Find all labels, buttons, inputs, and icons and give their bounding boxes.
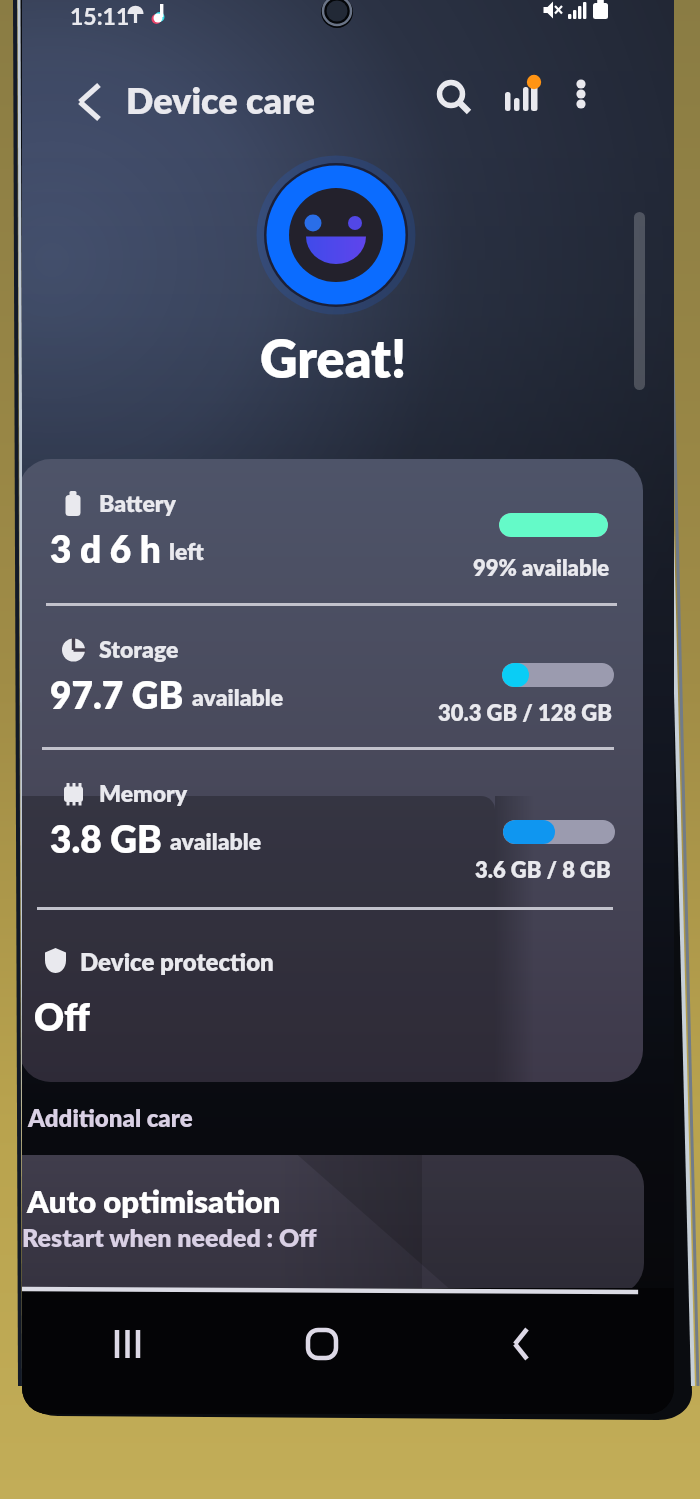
staticText: Battery <box>99 489 176 517</box>
staticText: left <box>169 537 204 565</box>
button[interactable]: Device care <box>126 78 315 121</box>
staticText: 3 d 6 h <box>50 526 161 570</box>
staticText: Additional care <box>28 1103 193 1132</box>
staticText: 97.7 GB <box>50 672 184 716</box>
button[interactable]: Usage statistics <box>483 70 531 118</box>
button[interactable]: More options <box>557 70 605 118</box>
button[interactable]: Battery <box>22 483 643 613</box>
staticText: Memory <box>99 779 188 807</box>
staticText: Off <box>34 994 90 1038</box>
button[interactable]: Storage <box>22 629 643 759</box>
staticText: available <box>170 827 262 855</box>
button[interactable]: Back <box>492 1318 544 1370</box>
button[interactable]: Recent apps <box>102 1318 154 1370</box>
staticText: 3.8 GB <box>50 816 162 860</box>
staticText: Device protection <box>80 947 274 976</box>
staticText: Storage <box>99 635 179 663</box>
button[interactable]: Search <box>427 70 475 118</box>
staticText: 99% available <box>473 554 610 580</box>
button[interactable]: Navigate up <box>58 78 106 126</box>
staticText: Restart when needed : Off <box>22 1222 317 1252</box>
staticText: Device care <box>126 78 315 121</box>
button[interactable]: Home <box>296 1318 348 1370</box>
staticText: 15:11 <box>70 2 130 30</box>
button[interactable]: Auto optimisation <box>22 1155 644 1295</box>
staticText: 30.3 GB / 128 GB <box>438 699 612 725</box>
staticText: Auto optimisation <box>27 1182 281 1219</box>
button[interactable]: Device protection <box>22 921 643 1081</box>
staticText: available <box>192 683 284 711</box>
button[interactable]: Memory <box>22 773 643 903</box>
staticText: Great! <box>260 327 407 389</box>
staticText: 3.6 GB / 8 GB <box>475 856 611 882</box>
